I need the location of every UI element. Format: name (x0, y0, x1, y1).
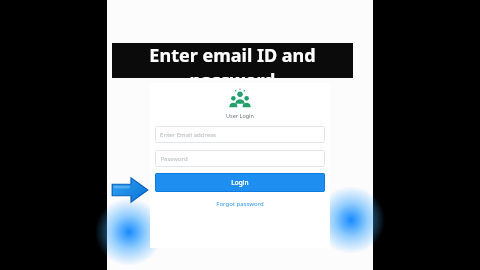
staticText: Password (160, 155, 188, 163)
staticText: User Login (226, 112, 254, 119)
staticText: Enter email ID and password (112, 43, 353, 78)
button[interactable]: Login (155, 173, 325, 192)
staticText: Enter Email address (160, 131, 216, 139)
button[interactable]: Forgot password (216, 200, 264, 208)
button[interactable]: Password (155, 150, 325, 167)
other: Pointer to Login button (109, 174, 149, 206)
staticText: Forgot password (216, 200, 264, 208)
button[interactable]: Enter Email address (155, 126, 325, 143)
staticText: Login (231, 178, 249, 187)
other: User Login (229, 88, 251, 110)
